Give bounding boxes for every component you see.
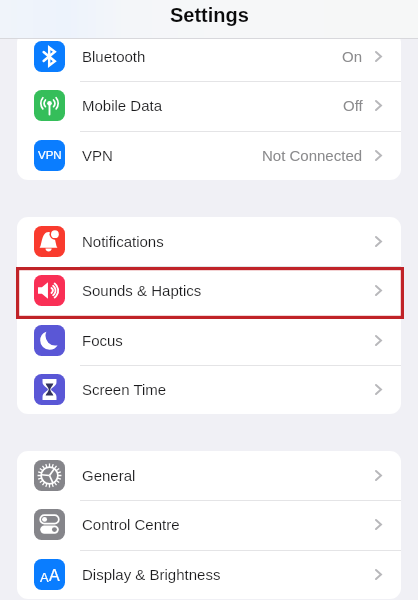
staticText: General	[82, 467, 136, 484]
staticText: Off	[343, 97, 363, 114]
button[interactable]: Mobile Data	[17, 81, 401, 130]
button[interactable]: VPN	[17, 131, 401, 180]
button[interactable]: Sounds & Haptics	[17, 266, 401, 315]
button[interactable]: A	[17, 550, 401, 599]
staticText: Screen Time	[82, 381, 167, 398]
staticText: VPN	[82, 147, 113, 164]
staticText: A	[40, 570, 49, 585]
staticText: A	[49, 567, 60, 585]
button[interactable]: Focus	[17, 316, 401, 365]
staticText: On	[342, 48, 363, 65]
staticText: Bluetooth	[82, 48, 146, 65]
staticText: Notifications	[82, 233, 164, 250]
button[interactable]: General	[17, 451, 401, 500]
button[interactable]: Control Centre	[17, 500, 401, 549]
button[interactable]: Screen Time	[17, 365, 401, 414]
staticText: Display & Brightness	[82, 566, 221, 583]
staticText: Sounds & Haptics	[82, 282, 202, 299]
staticText: Mobile Data	[82, 97, 163, 114]
staticText: Focus	[82, 332, 123, 349]
button[interactable]: Notifications	[17, 217, 401, 266]
button[interactable]: Bluetooth	[17, 32, 401, 81]
staticText: Not Connected	[262, 147, 363, 164]
staticText: VPN	[38, 149, 62, 162]
staticText: Control Centre	[82, 516, 180, 533]
staticText: Settings	[170, 4, 249, 26]
